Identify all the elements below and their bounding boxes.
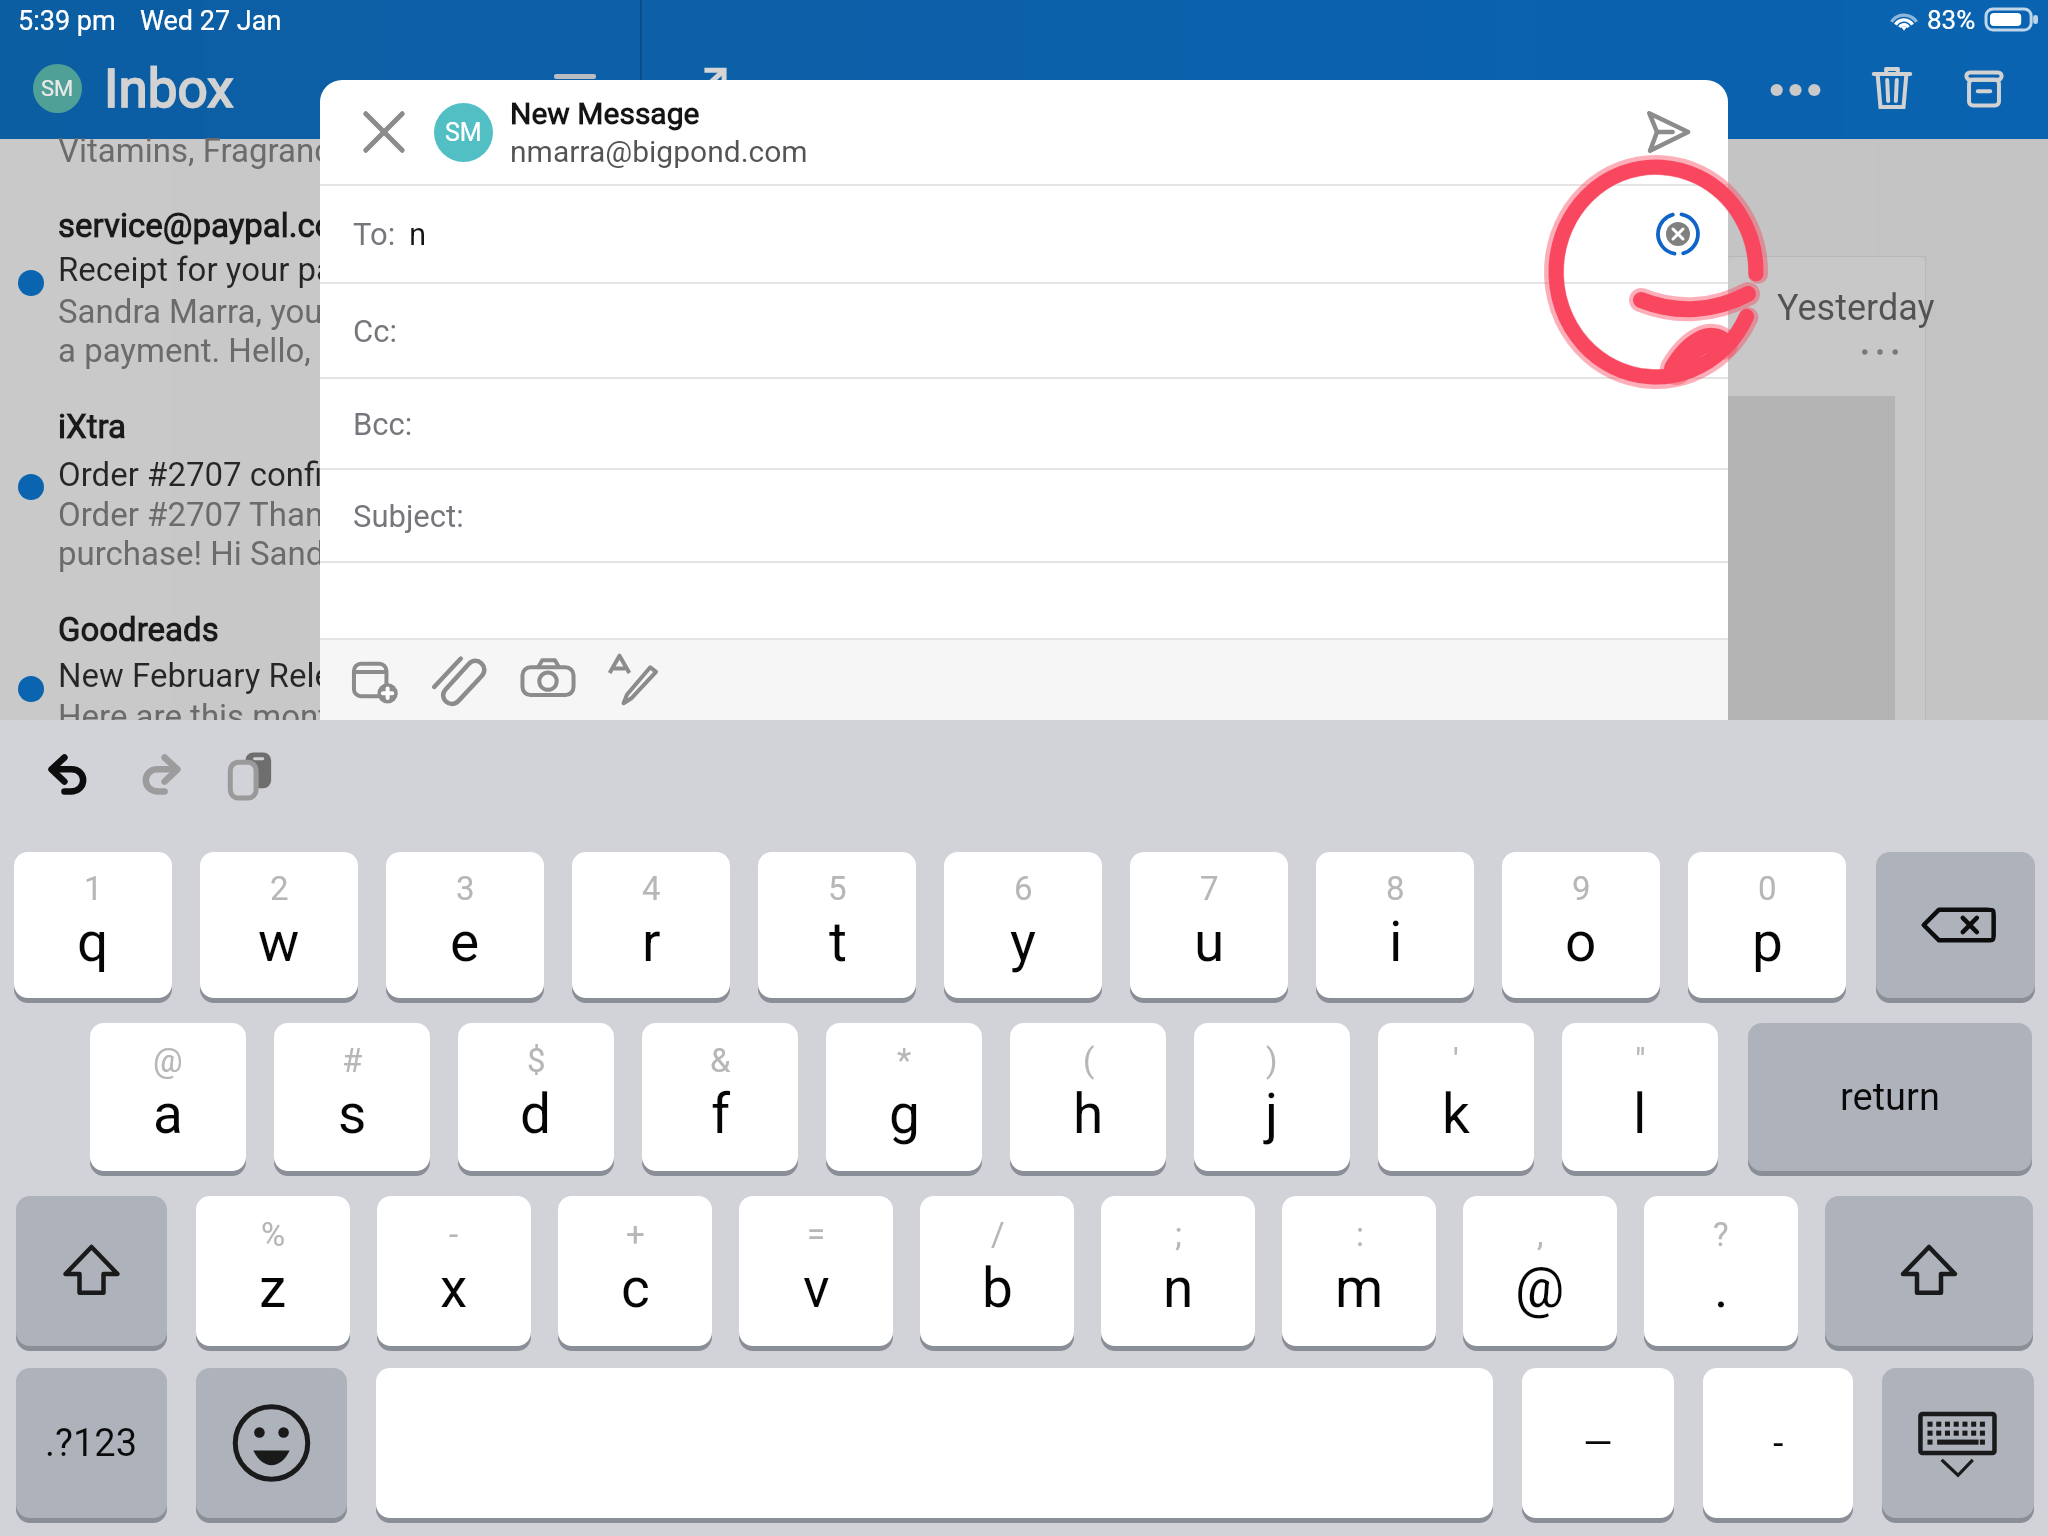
button[interactable]: Hide keyboard (1882, 1368, 2034, 1518)
button[interactable]: 6 (944, 852, 1102, 998)
button[interactable]: @ (90, 1023, 246, 1171)
button[interactable]: ) (1194, 1023, 1350, 1171)
button[interactable]: Redo (141, 756, 179, 793)
button[interactable]: Yesterday (1777, 285, 1935, 331)
staticText: / (991, 1215, 1005, 1254)
staticText: ( (1083, 1041, 1095, 1080)
staticText: 9 (1572, 869, 1591, 908)
button[interactable]: = (739, 1196, 893, 1346)
button[interactable]: Cc: (353, 284, 1728, 377)
button[interactable]: Shift (16, 1196, 167, 1346)
button[interactable]: Send (1644, 108, 1692, 156)
button[interactable]: Bcc: (353, 379, 1728, 468)
button[interactable]: Shift (1825, 1196, 2033, 1346)
button[interactable]: Undo (50, 756, 88, 793)
button[interactable]: return (1748, 1023, 2032, 1171)
button[interactable]: Delete (1868, 63, 1916, 113)
staticText: u (1194, 910, 1225, 974)
button[interactable]: ( (1010, 1023, 1166, 1171)
button[interactable]: Subject: (353, 470, 1728, 561)
button[interactable]: Draw (605, 651, 663, 709)
staticText: Goodreads (58, 610, 219, 649)
button[interactable]: More options (1857, 338, 1903, 366)
staticText: 5:39 pm (18, 5, 116, 37)
staticText: b (982, 1256, 1013, 1320)
button[interactable]: Archive (1962, 66, 2006, 112)
staticText: Subject: (353, 498, 464, 534)
button[interactable]: Paste (229, 751, 272, 800)
staticText: k (1442, 1082, 1470, 1146)
button[interactable]: % (196, 1196, 350, 1346)
button[interactable]: Email from iXtra (0, 400, 2048, 585)
staticText: Sandra Marra, you've sent (58, 292, 434, 331)
staticText: Yesterday (1777, 287, 1935, 329)
button[interactable]: 7 (1130, 852, 1288, 998)
button[interactable]: 8 (1316, 852, 1474, 998)
button[interactable]: " (1562, 1023, 1718, 1171)
button[interactable]: Backspace (1876, 852, 2035, 998)
button[interactable]: 9 (1502, 852, 1660, 998)
staticText: a payment. Hello, Sandra (58, 331, 422, 370)
button[interactable]: 5 (758, 852, 916, 998)
button[interactable]: 3 (386, 852, 544, 998)
staticText: + (626, 1215, 645, 1254)
button[interactable]: # (274, 1023, 430, 1171)
staticText: @ (153, 1041, 183, 1080)
button[interactable]: — (1522, 1368, 1674, 1518)
button[interactable]: - (1703, 1368, 1853, 1518)
button[interactable]: .?123 (16, 1368, 167, 1518)
button[interactable]: : (1282, 1196, 1436, 1346)
button[interactable]: 4 (572, 852, 730, 998)
staticText: q (77, 910, 109, 974)
staticText: Order #2707 Thanks for (58, 495, 407, 534)
staticText: .?123 (45, 1421, 138, 1466)
button[interactable]: * (826, 1023, 982, 1171)
staticText: 6 (1014, 869, 1033, 908)
button[interactable]: 2 (200, 852, 358, 998)
staticText: j (1265, 1082, 1279, 1146)
staticText: service@paypal.com (58, 206, 363, 245)
button[interactable]: ; (1101, 1196, 1255, 1346)
staticText: . (1714, 1256, 1729, 1320)
staticText: s (338, 1082, 367, 1146)
button[interactable]: $ (458, 1023, 614, 1171)
button[interactable]: Email from Goodreads (0, 604, 2048, 720)
staticText: g (889, 1082, 920, 1146)
staticText: 2 (270, 869, 289, 908)
button[interactable]: Clear (1654, 210, 1702, 258)
staticText: — (1583, 1421, 1613, 1466)
staticText: 4 (642, 869, 661, 908)
button[interactable]: , (1463, 1196, 1617, 1346)
staticText: l (1633, 1082, 1647, 1146)
button[interactable]: & (642, 1023, 798, 1171)
button[interactable]: ? (1644, 1196, 1798, 1346)
button[interactable]: 1 (14, 852, 172, 998)
staticText: nmarra@bigpond.com (510, 134, 808, 169)
staticText: New Message (510, 96, 700, 131)
button[interactable]: / (920, 1196, 1074, 1346)
button[interactable]: To: (353, 186, 1728, 282)
button[interactable]: Add from files (347, 651, 405, 709)
button[interactable]: 0 (1688, 852, 1846, 998)
button[interactable]: - (377, 1196, 531, 1346)
staticText: SM (41, 76, 74, 102)
button[interactable]: Camera (519, 651, 577, 709)
button[interactable]: More options (1767, 72, 1824, 108)
staticText: 1 (84, 869, 103, 908)
button[interactable]: Attach (433, 651, 491, 709)
button[interactable]: Emoji (196, 1368, 347, 1518)
button[interactable]: ' (1378, 1023, 1534, 1171)
staticText: purchase! Hi Sandra, we (58, 534, 410, 573)
button[interactable]: + (558, 1196, 712, 1346)
staticText: ) (1266, 1041, 1278, 1080)
staticText: x (440, 1256, 468, 1320)
button[interactable]: Email from service@paypal.com (0, 200, 2048, 380)
staticText: , (1537, 1215, 1544, 1254)
button[interactable]: Close (360, 108, 408, 156)
staticText: y (1010, 910, 1037, 974)
staticText: 7 (1200, 869, 1219, 908)
staticText: v (803, 1256, 830, 1320)
staticText: & (710, 1041, 731, 1080)
button[interactable]: SM (33, 64, 82, 113)
